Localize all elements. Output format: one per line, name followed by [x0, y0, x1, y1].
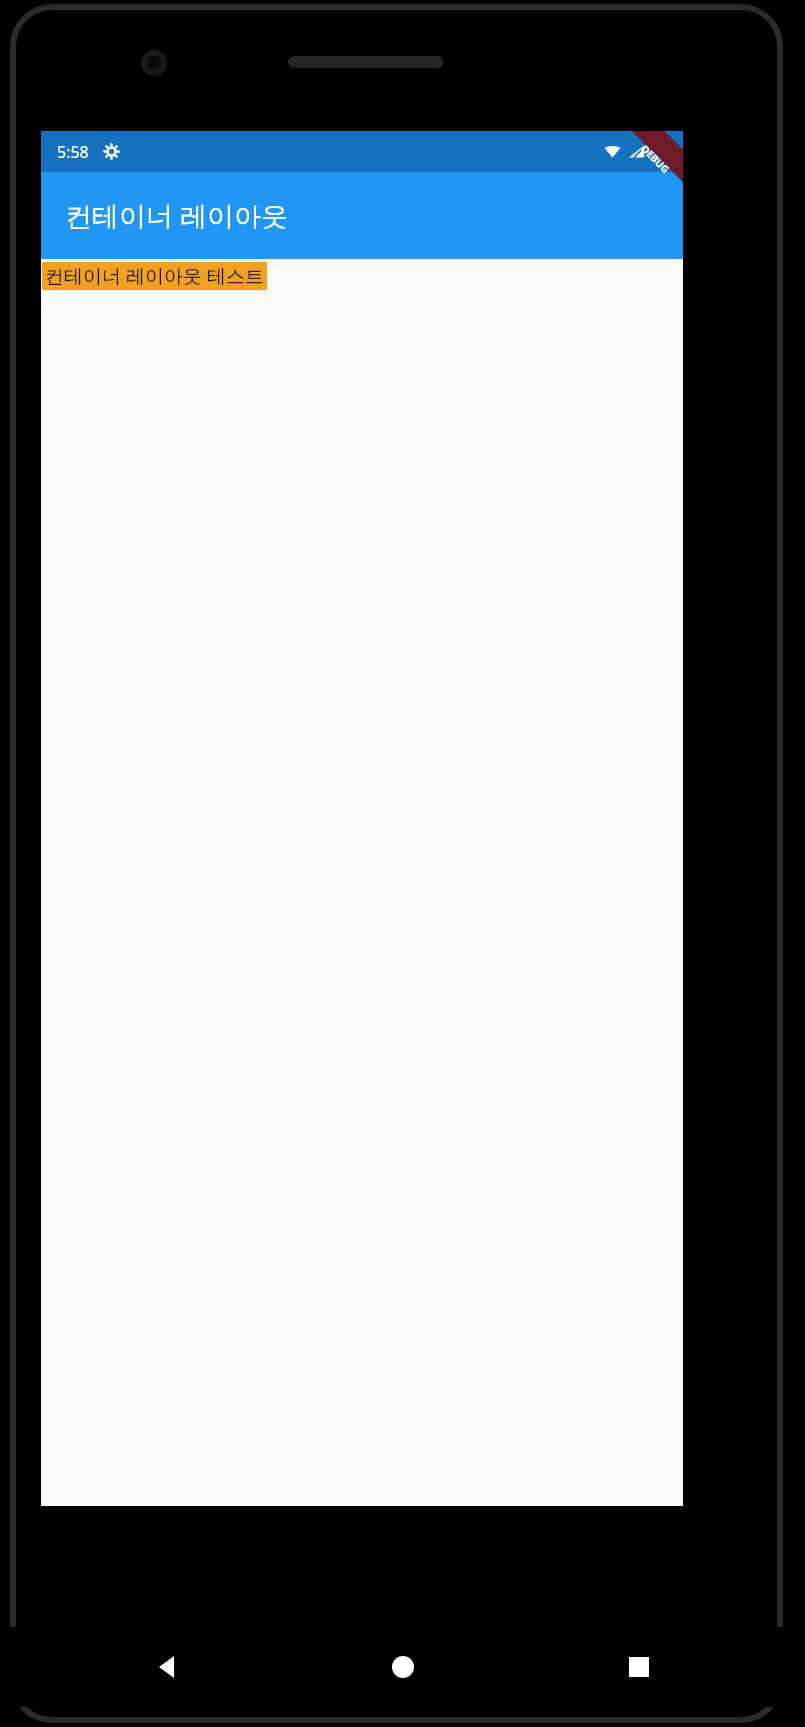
button[interactable]: 컨테이너 레이아웃: [41, 172, 683, 259]
staticText: DEBUG: [638, 142, 673, 176]
staticText: 5:58: [57, 141, 89, 163]
button[interactable]: Back: [139, 1639, 195, 1695]
button[interactable]: Home: [375, 1639, 431, 1695]
button[interactable]: Recent apps: [611, 1639, 667, 1695]
button[interactable]: 컨테이너 레이아웃 테스트: [42, 262, 267, 290]
staticText: 컨테이너 레이아웃 테스트: [45, 263, 264, 289]
staticText: 컨테이너 레이아웃: [65, 197, 289, 234]
